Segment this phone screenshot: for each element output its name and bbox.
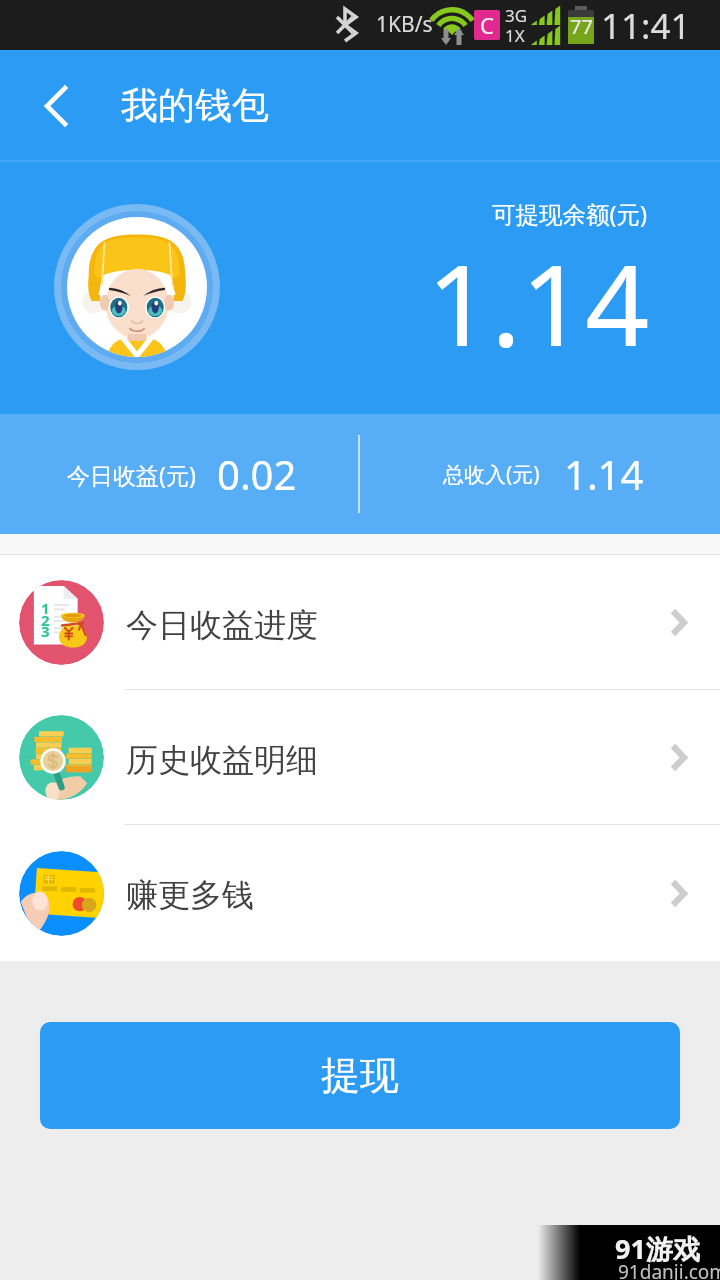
staticText: 0.02 (217, 447, 297, 501)
staticText: 1.14 (427, 226, 650, 379)
staticText: 2 (41, 610, 50, 630)
staticText: 提现 (321, 1051, 399, 1100)
staticText: 今日收益(元) (67, 459, 196, 490)
staticText: 1 (41, 598, 50, 618)
staticText: 91danji.com (618, 1259, 720, 1280)
staticText: 赚更多钱 (126, 875, 254, 915)
button[interactable]: 赚更多钱 (0, 825, 720, 961)
staticText: 11:41 (601, 2, 691, 50)
staticText: 1X (505, 24, 525, 47)
staticText: 77 (570, 13, 593, 40)
button[interactable]: 提现 (40, 1022, 680, 1129)
staticText: 1.14 (564, 447, 644, 501)
staticText: 今日收益进度 (126, 605, 318, 645)
staticText: 总收入(元) (443, 460, 540, 489)
staticText: 3G (505, 4, 528, 27)
staticText: 我的钱包 (121, 82, 269, 129)
staticText: 历史收益明细 (126, 740, 318, 780)
staticText: C (480, 10, 494, 40)
staticText: 3 (41, 621, 50, 641)
button[interactable]: Back (0, 50, 114, 162)
staticText: 1KB/s (376, 10, 433, 39)
staticText: 可提现余额(元) (492, 198, 648, 230)
button[interactable]: 1 (0, 555, 720, 690)
staticText: 91游戏 (615, 1230, 700, 1267)
button[interactable]: 历史收益明细 (0, 690, 720, 825)
